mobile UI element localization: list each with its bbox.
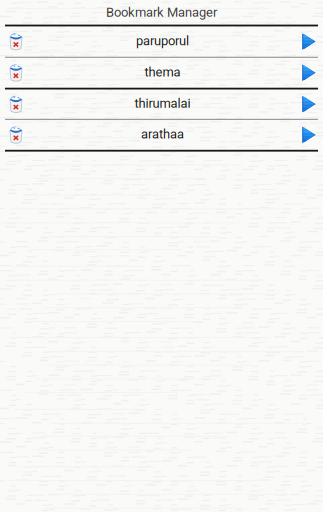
- staticText: thema: [144, 64, 180, 80]
- button[interactable]: Delete thirumalai: [0, 89, 29, 119]
- button[interactable]: Open arathaa: [296, 120, 323, 150]
- staticText: thirumalai: [134, 96, 190, 111]
- button[interactable]: Delete paruporul: [0, 26, 29, 57]
- button[interactable]: Open paruporul: [296, 26, 323, 57]
- staticText: paruporul: [136, 33, 189, 48]
- button[interactable]: paruporul: [29, 26, 296, 57]
- staticText: arathaa: [141, 126, 184, 142]
- button[interactable]: Delete arathaa: [0, 120, 29, 150]
- button[interactable]: thema: [29, 58, 296, 88]
- button[interactable]: Delete thema: [0, 58, 29, 88]
- button[interactable]: Open thirumalai: [296, 89, 323, 119]
- button[interactable]: thirumalai: [29, 89, 296, 119]
- button[interactable]: arathaa: [29, 120, 296, 150]
- staticText: Bookmark Manager: [106, 5, 217, 20]
- button[interactable]: Open thema: [296, 58, 323, 88]
